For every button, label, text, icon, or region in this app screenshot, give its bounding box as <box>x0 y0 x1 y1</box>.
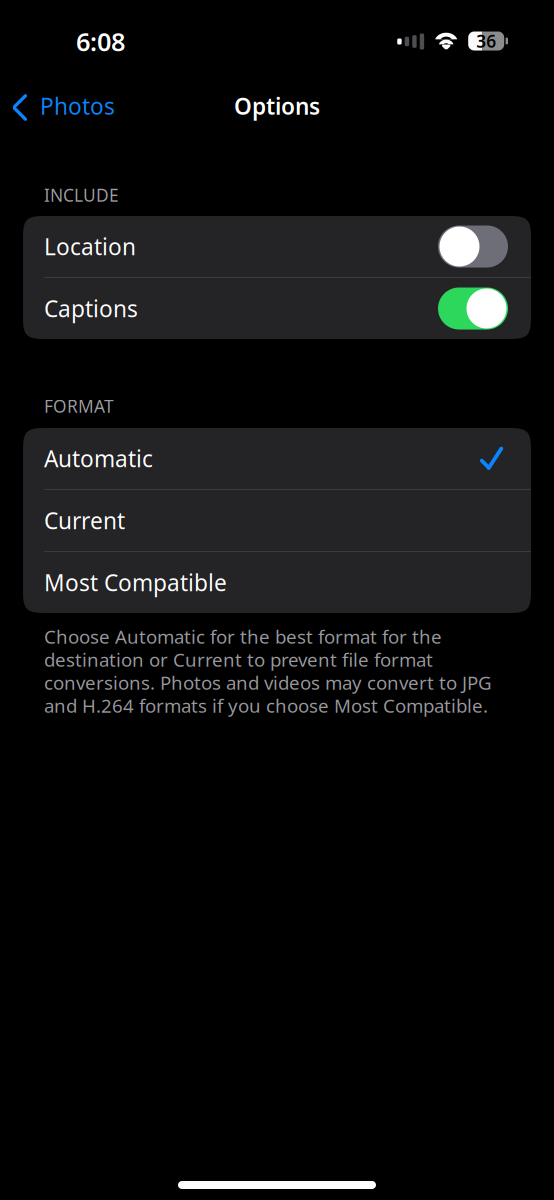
staticText: Photos <box>40 91 115 121</box>
staticText: 36 <box>476 29 496 52</box>
staticText: and H.264 formats if you choose Most Com… <box>44 693 488 718</box>
button[interactable]: Location <box>23 216 531 277</box>
button[interactable]: Automatic <box>23 428 531 489</box>
staticText: Options <box>234 91 320 121</box>
staticText: INCLUDE <box>44 183 119 206</box>
staticText: Captions <box>44 293 138 323</box>
staticText: Location <box>44 231 136 261</box>
staticText: conversions. Photos and videos may conve… <box>44 670 492 695</box>
staticText: FORMAT <box>44 394 114 417</box>
staticText: 6:08 <box>76 25 125 58</box>
staticText: destination or Current to prevent file f… <box>44 647 433 672</box>
button[interactable]: Photos <box>0 82 129 130</box>
button[interactable]: Current <box>23 490 531 551</box>
staticText: Most Compatible <box>44 567 227 597</box>
button[interactable]: Captions <box>23 278 531 339</box>
staticText: Choose Automatic for the best format for… <box>44 624 442 649</box>
staticText: Automatic <box>44 443 153 473</box>
button[interactable]: Most Compatible <box>23 552 531 613</box>
staticText: Current <box>44 505 125 535</box>
